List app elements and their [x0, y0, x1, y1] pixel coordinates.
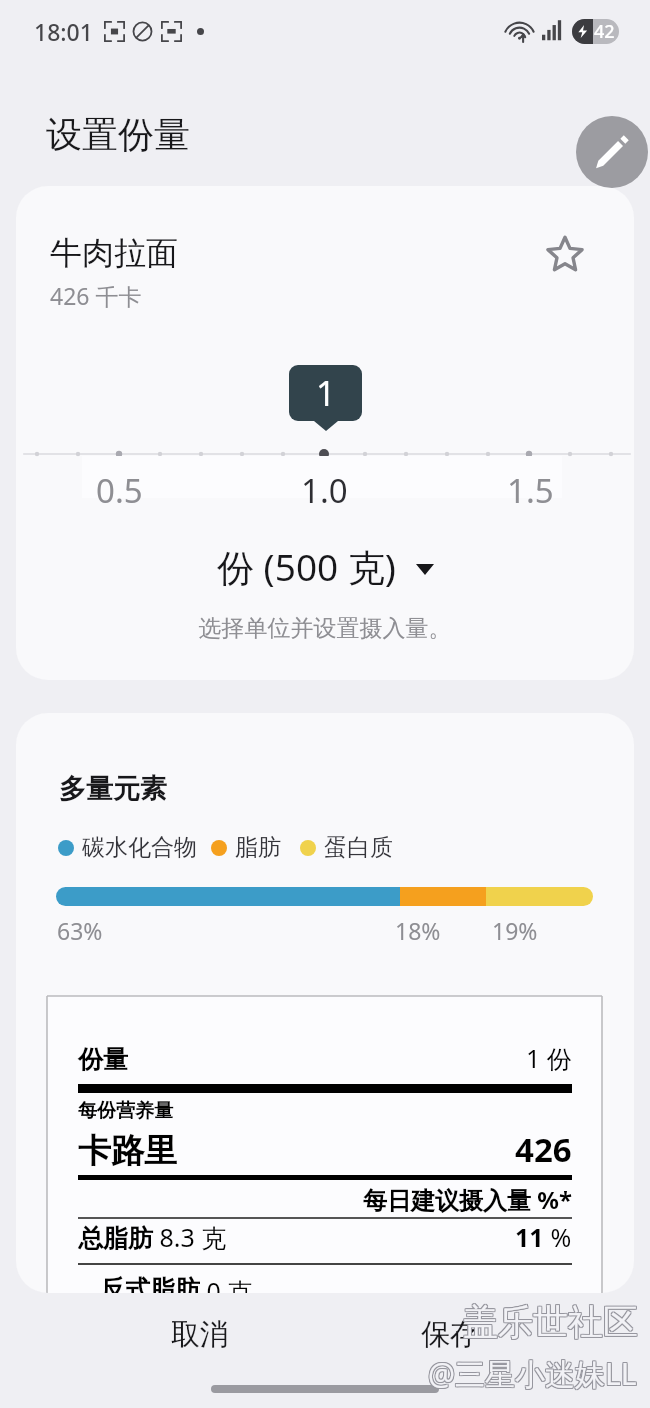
staticText: 总脂肪 [78, 1223, 153, 1254]
staticText: 19% [492, 915, 538, 941]
staticText: 设置份量 [46, 112, 190, 157]
staticText: 取消 [171, 1316, 229, 1353]
staticText: 盖乐世社区 [462, 1299, 637, 1343]
staticText: 盖乐世社区 [462, 1301, 637, 1345]
staticText: 0.5 [96, 468, 143, 510]
staticText: 426 [515, 1127, 572, 1172]
staticText: 盖乐世社区 [464, 1300, 639, 1344]
staticText: @三星小迷妹LL [429, 1353, 638, 1394]
staticText: 每份营养量 [78, 1099, 173, 1123]
staticText: 盖乐世社区 [463, 1301, 638, 1345]
staticText: @三星小迷妹LL [429, 1352, 638, 1393]
staticText: @三星小迷妹LL [429, 1354, 638, 1395]
staticText: 8.3 克 [153, 1220, 227, 1254]
staticText: 盖乐世社区 [462, 1300, 637, 1344]
staticText: 1 份 [526, 1041, 572, 1075]
staticText: 保存 [421, 1316, 479, 1353]
staticText: 18% [395, 915, 441, 941]
staticText: 盖乐世社区 [464, 1301, 639, 1345]
staticText: @三星小迷妹LL [427, 1353, 636, 1394]
staticText: % [544, 1220, 572, 1254]
staticText: @三星小迷妹LL [428, 1352, 637, 1393]
staticText: 63% [57, 915, 103, 941]
staticText: 1 [316, 370, 336, 416]
button[interactable]: 保存 [350, 1293, 550, 1375]
staticText: 18:01 [34, 16, 93, 47]
staticText: 1.5 [507, 468, 554, 510]
staticText: 426 千卡 [50, 280, 142, 311]
button[interactable]: Edit [576, 116, 648, 188]
staticText: @三星小迷妹LL [428, 1354, 637, 1395]
staticText: 选择单位并设置摄入量。 [16, 614, 634, 643]
button[interactable]: Favorite [539, 228, 591, 280]
staticText: @三星小迷妹LL [427, 1352, 636, 1393]
staticText: 1.0 [301, 468, 348, 510]
button[interactable]: 份 (500 克) [16, 541, 634, 592]
staticText: 42 [594, 19, 615, 44]
staticText: 份量 [78, 1044, 526, 1075]
staticText: 碳水化合物 [82, 833, 197, 862]
staticText: 份 (500 克) [217, 541, 396, 592]
button[interactable]: 取消 [100, 1293, 300, 1375]
staticText: 牛肉拉面 [50, 233, 178, 273]
staticText: 蛋白质 [324, 833, 393, 862]
staticText: 每日建议摄入量 %* [78, 1183, 572, 1216]
staticText: 反式脂肪 [100, 1274, 200, 1293]
staticText: @三星小迷妹LL [428, 1353, 637, 1394]
staticText: @三星小迷妹LL [427, 1354, 636, 1395]
staticText: 盖乐世社区 [464, 1299, 639, 1343]
staticText: 多量元素 [59, 772, 167, 806]
staticText: 脂肪 [235, 833, 281, 862]
staticText: 盖乐世社区 [463, 1300, 638, 1344]
staticText: 卡路里 [78, 1130, 515, 1172]
staticText: 盖乐世社区 [463, 1299, 638, 1343]
staticText: 11 [515, 1220, 544, 1254]
staticText: 0 克 [200, 1274, 253, 1293]
